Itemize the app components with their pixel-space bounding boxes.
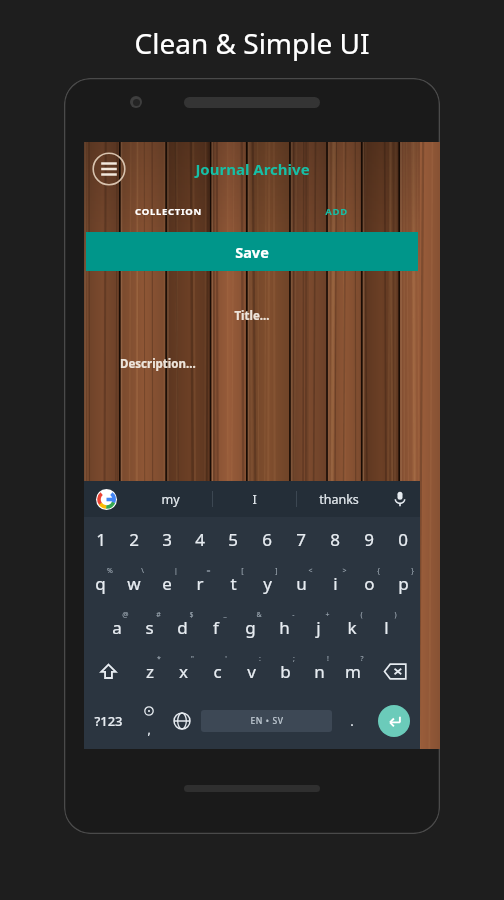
staticText: s: [145, 616, 154, 639]
staticText: ,: [147, 721, 151, 737]
button[interactable]: w: [117, 561, 150, 605]
staticText: j: [316, 616, 321, 639]
staticText: $: [189, 610, 194, 620]
staticText: =: [206, 566, 211, 576]
button[interactable]: e: [150, 561, 183, 605]
button[interactable]: I: [213, 481, 296, 517]
button[interactable]: 5: [216, 517, 250, 561]
button[interactable]: Change language: [165, 693, 198, 749]
staticText: :: [259, 654, 261, 664]
staticText: a: [112, 616, 122, 639]
button[interactable]: 8: [318, 517, 352, 561]
button[interactable]: Open navigation menu: [90, 150, 128, 188]
staticText: e: [162, 572, 172, 595]
staticText: Description...: [120, 356, 196, 372]
staticText: r: [196, 572, 204, 595]
button[interactable]: 0: [386, 517, 420, 561]
button[interactable]: 6: [250, 517, 284, 561]
staticText: @: [122, 610, 129, 620]
staticText: EN • SV: [250, 715, 284, 727]
button[interactable]: k: [335, 605, 369, 649]
staticText: y: [263, 572, 272, 595]
staticText: }: [411, 566, 414, 576]
staticText: f: [213, 616, 219, 639]
button[interactable]: v: [234, 649, 268, 693]
button[interactable]: i: [318, 561, 352, 605]
button[interactable]: r: [183, 561, 216, 605]
button[interactable]: ?123: [84, 693, 132, 749]
staticText: 9: [364, 528, 374, 551]
staticText: my: [161, 491, 180, 508]
staticText: p: [398, 572, 409, 595]
staticText: 1: [96, 528, 106, 551]
button[interactable]: o: [352, 561, 386, 605]
button[interactable]: 3: [150, 517, 183, 561]
button[interactable]: ADD: [252, 196, 420, 226]
staticText: x: [179, 660, 188, 683]
button[interactable]: Title...: [84, 299, 420, 333]
button[interactable]: Enter: [368, 693, 420, 749]
staticText: Save: [235, 242, 269, 262]
button[interactable]: Emoji and comma: [132, 693, 165, 749]
button[interactable]: 4: [183, 517, 216, 561]
button[interactable]: 7: [284, 517, 318, 561]
staticText: 7: [296, 528, 306, 551]
button[interactable]: n: [302, 649, 336, 693]
staticText: (: [360, 610, 363, 620]
staticText: Title...: [234, 308, 270, 324]
button[interactable]: p: [386, 561, 420, 605]
button[interactable]: 9: [352, 517, 386, 561]
button[interactable]: j: [301, 605, 335, 649]
button[interactable]: .: [335, 693, 368, 749]
button[interactable]: z: [133, 649, 166, 693]
staticText: *: [157, 654, 161, 664]
staticText: <: [308, 566, 313, 576]
staticText: Journal Archive: [195, 159, 310, 179]
button[interactable]: s: [133, 605, 166, 649]
button[interactable]: EN • SV: [201, 710, 332, 732]
button[interactable]: Voice input: [380, 481, 420, 517]
button[interactable]: Shift: [84, 649, 133, 693]
button[interactable]: d: [166, 605, 199, 649]
staticText: i: [333, 572, 338, 595]
staticText: t: [230, 572, 237, 595]
button[interactable]: m: [336, 649, 370, 693]
staticText: ]: [275, 566, 278, 576]
staticText: ': [225, 654, 227, 664]
button[interactable]: 2: [117, 517, 150, 561]
staticText: \: [141, 566, 144, 576]
staticText: 8: [330, 528, 340, 551]
staticText: 6: [262, 528, 272, 551]
button[interactable]: Description...: [120, 347, 420, 381]
staticText: v: [247, 660, 256, 683]
button[interactable]: f: [199, 605, 233, 649]
button[interactable]: g: [233, 605, 267, 649]
button[interactable]: u: [284, 561, 318, 605]
staticText: c: [213, 660, 222, 683]
button[interactable]: Save: [86, 232, 418, 271]
button[interactable]: a: [100, 605, 133, 649]
button[interactable]: my: [128, 481, 212, 517]
button[interactable]: 1: [84, 517, 117, 561]
staticText: m: [345, 660, 361, 683]
button[interactable]: c: [200, 649, 234, 693]
staticText: !: [327, 654, 329, 664]
button[interactable]: q: [84, 561, 117, 605]
button[interactable]: h: [267, 605, 301, 649]
button[interactable]: thanks: [297, 481, 380, 517]
staticText: n: [314, 660, 325, 683]
button[interactable]: l: [369, 605, 403, 649]
button[interactable]: Google search: [84, 481, 128, 517]
staticText: ADD: [325, 205, 348, 218]
staticText: {: [377, 566, 380, 576]
staticText: 0: [398, 528, 408, 551]
button[interactable]: x: [166, 649, 200, 693]
button[interactable]: y: [250, 561, 284, 605]
staticText: d: [177, 616, 188, 639]
staticText: ?123: [94, 712, 123, 730]
button[interactable]: b: [268, 649, 302, 693]
button[interactable]: Backspace: [370, 649, 420, 693]
button[interactable]: COLLECTION: [84, 196, 252, 226]
staticText: Clean & Simple UI: [134, 24, 370, 62]
button[interactable]: t: [216, 561, 250, 605]
